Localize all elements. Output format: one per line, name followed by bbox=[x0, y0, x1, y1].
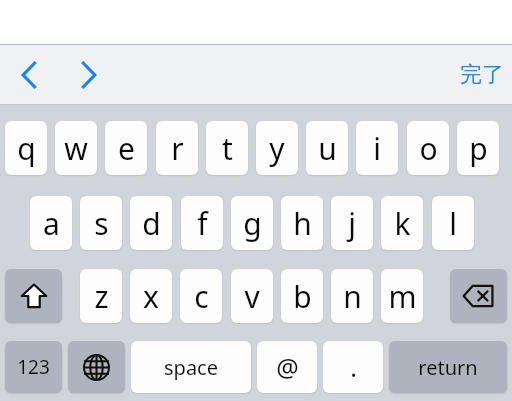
staticText: w bbox=[64, 128, 88, 169]
button[interactable]: Backspace bbox=[450, 269, 507, 323]
staticText: y bbox=[269, 128, 285, 169]
staticText: e bbox=[118, 128, 135, 169]
button[interactable]: e bbox=[105, 121, 147, 175]
button[interactable]: i bbox=[356, 121, 398, 175]
button[interactable]: q bbox=[5, 121, 47, 175]
button[interactable]: Switch keyboard bbox=[68, 341, 125, 393]
button[interactable]: space bbox=[131, 341, 251, 393]
button[interactable]: return bbox=[389, 341, 507, 393]
staticText: space bbox=[164, 354, 218, 381]
button[interactable]: Shift bbox=[5, 269, 62, 323]
staticText: h bbox=[293, 203, 312, 244]
staticText: a bbox=[43, 203, 60, 244]
button[interactable]: 123 bbox=[5, 341, 62, 393]
staticText: q bbox=[17, 128, 36, 169]
staticText: . bbox=[350, 350, 357, 384]
button[interactable]: l bbox=[432, 196, 474, 250]
staticText: 123 bbox=[17, 354, 50, 380]
button[interactable]: s bbox=[80, 196, 122, 250]
staticText: n bbox=[343, 276, 362, 317]
button[interactable]: o bbox=[407, 121, 449, 175]
button[interactable]: k bbox=[381, 196, 423, 250]
staticText: x bbox=[143, 276, 159, 317]
staticText: d bbox=[142, 203, 161, 244]
button[interactable]: a bbox=[30, 196, 72, 250]
staticText: return bbox=[418, 354, 478, 381]
staticText: t bbox=[222, 128, 233, 169]
button[interactable]: d bbox=[130, 196, 172, 250]
staticText: 完了 bbox=[460, 61, 504, 89]
button[interactable]: g bbox=[231, 196, 273, 250]
button[interactable]: 完了 bbox=[455, 57, 509, 93]
staticText: i bbox=[373, 128, 381, 169]
button[interactable]: m bbox=[381, 269, 423, 323]
button[interactable]: b bbox=[281, 269, 323, 323]
button[interactable]: h bbox=[281, 196, 323, 250]
staticText: r bbox=[171, 128, 184, 169]
staticText: g bbox=[243, 203, 262, 244]
staticText: b bbox=[293, 276, 312, 317]
button[interactable]: t bbox=[206, 121, 248, 175]
staticText: p bbox=[469, 128, 488, 169]
staticText: j bbox=[348, 203, 356, 244]
button[interactable]: v bbox=[231, 269, 273, 323]
button[interactable]: j bbox=[331, 196, 373, 250]
staticText: l bbox=[449, 203, 457, 244]
staticText: c bbox=[194, 276, 209, 317]
button[interactable]: Previous field bbox=[8, 57, 52, 93]
button[interactable]: Next field bbox=[66, 57, 110, 93]
button[interactable]: @ bbox=[257, 341, 317, 393]
staticText: z bbox=[94, 276, 109, 317]
staticText: @ bbox=[276, 350, 299, 384]
staticText: u bbox=[318, 128, 337, 169]
staticText: f bbox=[197, 203, 208, 244]
button[interactable]: y bbox=[256, 121, 298, 175]
staticText: k bbox=[394, 203, 411, 244]
button[interactable]: p bbox=[457, 121, 499, 175]
staticText: o bbox=[419, 128, 438, 169]
button[interactable]: f bbox=[181, 196, 223, 250]
staticText: v bbox=[244, 276, 260, 317]
button[interactable]: c bbox=[180, 269, 222, 323]
button[interactable]: r bbox=[156, 121, 198, 175]
button[interactable]: w bbox=[55, 121, 97, 175]
button[interactable]: . bbox=[323, 341, 383, 393]
staticText: s bbox=[94, 203, 109, 244]
button[interactable]: x bbox=[130, 269, 172, 323]
button[interactable]: u bbox=[306, 121, 348, 175]
staticText: m bbox=[388, 276, 417, 317]
button[interactable]: z bbox=[80, 269, 122, 323]
button[interactable]: n bbox=[331, 269, 373, 323]
